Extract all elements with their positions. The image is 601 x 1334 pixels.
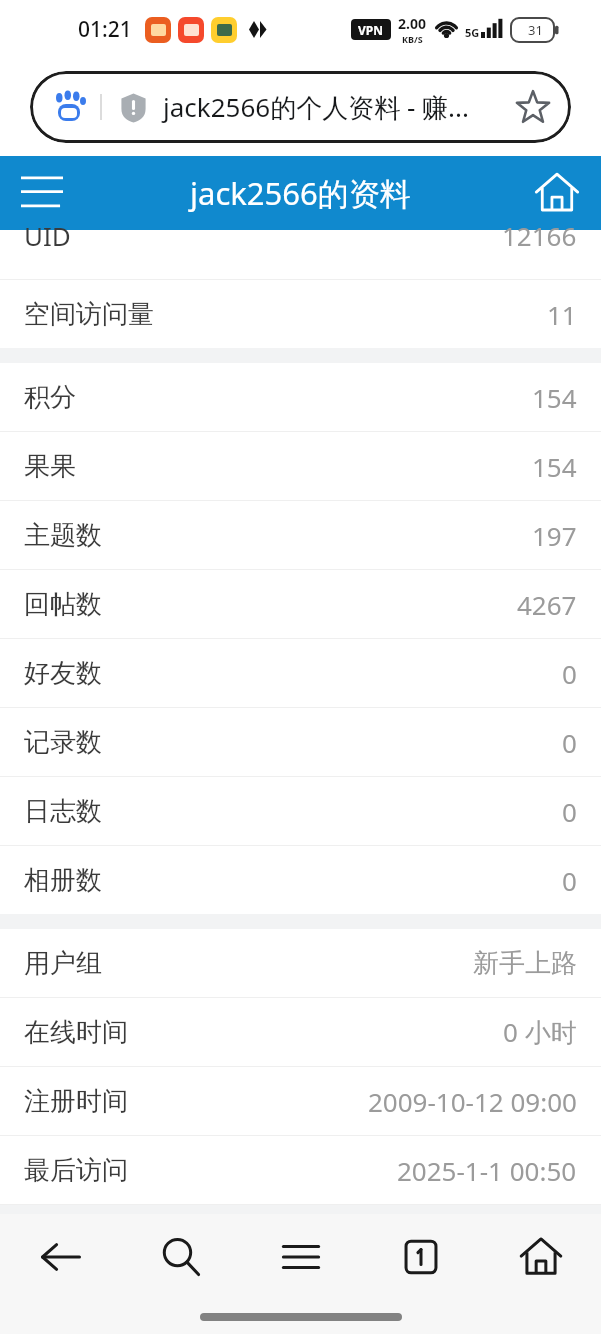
button[interactable]: Home [525,161,589,225]
staticText: 好友数 [24,657,102,690]
staticText: 0 小时 [503,1014,577,1050]
staticText: 5G [465,25,480,40]
staticText: 0 [562,656,577,691]
staticText: UID [24,218,71,253]
staticText: 回帖数 [24,588,102,621]
staticText: 在线时间 [24,1016,128,1049]
button[interactable]: 积分 [0,363,601,431]
staticText: 11 [547,297,577,332]
staticText: VPN [358,22,384,38]
button[interactable]: 果果 [0,432,601,500]
staticText: 积分 [24,381,76,414]
staticText: 相册数 [24,864,102,897]
staticText: 154 [532,449,577,484]
button[interactable]: Menu [10,161,74,225]
staticText: 用户组 [24,947,102,980]
staticText: 197 [532,518,577,553]
staticText: 新手上路 [473,947,577,980]
staticText: 2025-1-1 00:50 [397,1153,577,1188]
staticText: 0 [562,794,577,829]
button[interactable]: 注册时间 [0,1067,601,1135]
staticText: 31 [528,21,543,39]
button[interactable]: Menu [241,1214,361,1300]
staticText: 2009-10-12 09:00 [368,1084,577,1119]
staticText: 果果 [24,450,76,483]
button[interactable]: 好友数 [0,639,601,707]
staticText: 日志数 [24,795,102,828]
button[interactable]: Tabs, 1 open [361,1214,481,1300]
other: Site info [118,92,149,123]
staticText: 注册时间 [24,1085,128,1118]
staticText: 2.00 [398,14,426,33]
button[interactable]: 最后访问 [0,1136,601,1204]
button[interactable]: 用户组 [0,929,601,997]
staticText: jack2566的资料 [190,172,411,214]
other: Bookmark [515,89,551,125]
button[interactable]: 相册数 [0,846,601,914]
button[interactable]: Search [121,1214,241,1300]
button[interactable]: 空间访问量 [0,280,601,348]
staticText: 空间访问量 [24,298,154,331]
button[interactable]: 记录数 [0,708,601,776]
staticText: 12166 [502,218,577,253]
button[interactable]: UID [0,230,601,279]
other: Baidu [52,90,86,124]
staticText: KB/S [402,33,423,45]
button[interactable]: Baidu [30,71,571,143]
button[interactable]: 日志数 [0,777,601,845]
button[interactable]: 在线时间 [0,998,601,1066]
staticText: 01:21 [78,15,132,44]
staticText: 主题数 [24,519,102,552]
staticText: jack2566的个人资料 - 赚... [163,89,469,125]
button[interactable]: 主题数 [0,501,601,569]
staticText: 154 [532,380,577,415]
staticText: 记录数 [24,726,102,759]
button[interactable]: Home [481,1214,601,1300]
button[interactable]: Back [0,1214,121,1300]
staticText: 4267 [517,587,577,622]
staticText: 0 [562,863,577,898]
staticText: 0 [562,725,577,760]
button[interactable]: 回帖数 [0,570,601,638]
staticText: 最后访问 [24,1154,128,1187]
